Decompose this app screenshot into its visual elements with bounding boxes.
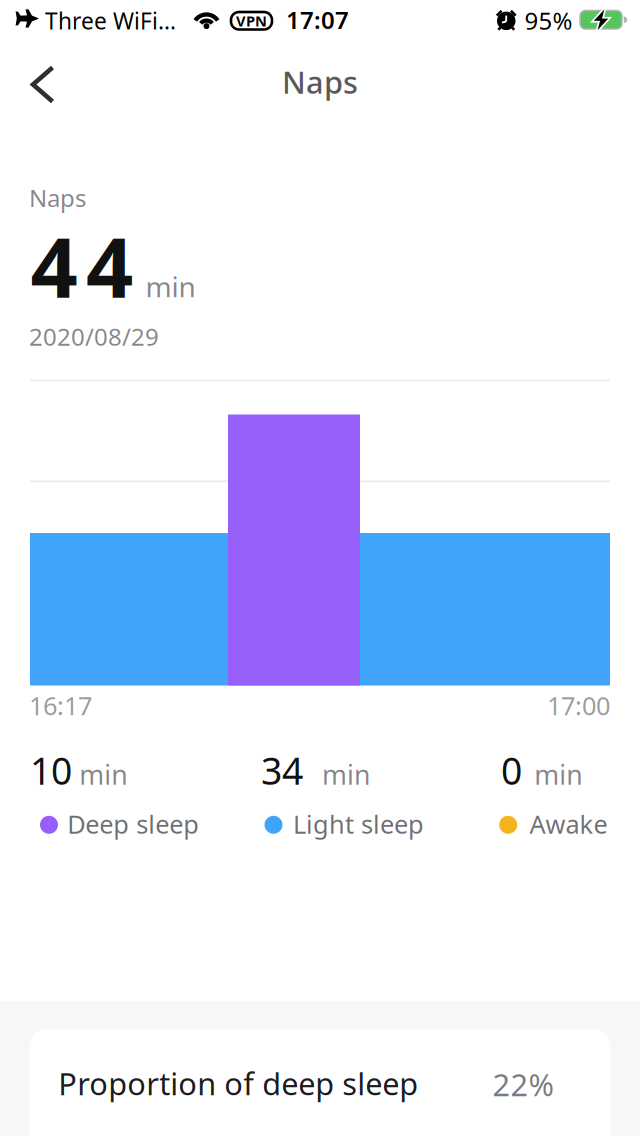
staticText: 95% bbox=[524, 4, 572, 36]
staticText: Light sleep bbox=[293, 807, 424, 841]
staticText: Naps bbox=[282, 61, 358, 102]
staticText: min bbox=[322, 757, 370, 792]
staticText: 17:00 bbox=[547, 688, 610, 722]
staticText: 17:07 bbox=[286, 4, 349, 36]
staticText: 2020/08/29 bbox=[29, 320, 159, 352]
staticText: min bbox=[79, 757, 127, 792]
staticText: 16:17 bbox=[29, 688, 92, 722]
staticText: min bbox=[534, 757, 582, 792]
staticText: Awake bbox=[529, 807, 607, 841]
staticText: Proportion of deep sleep bbox=[58, 1063, 418, 1104]
staticText: VPN bbox=[236, 11, 267, 30]
staticText: 34 bbox=[261, 745, 303, 795]
button[interactable]: Proportion of deep sleep bbox=[30, 1029, 610, 1136]
staticText: 44 bbox=[30, 211, 133, 320]
staticText: Naps bbox=[29, 182, 86, 214]
staticText: Three WiFi... bbox=[45, 6, 176, 36]
staticText: 22% bbox=[492, 1064, 553, 1105]
staticText: 10 bbox=[30, 745, 72, 795]
button[interactable]: Back bbox=[30, 65, 56, 104]
staticText: Deep sleep bbox=[67, 807, 199, 841]
staticText: 0 bbox=[501, 745, 522, 795]
staticText: min bbox=[145, 268, 195, 305]
